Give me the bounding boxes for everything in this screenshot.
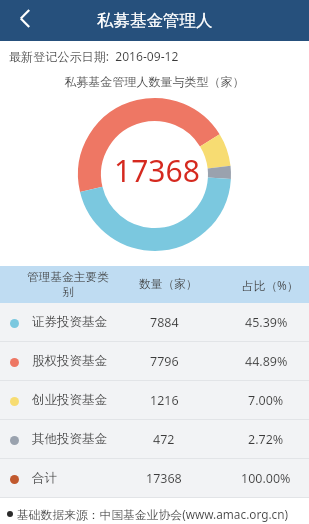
button[interactable]: 合计 [0, 459, 309, 497]
staticText: 股权投资基金 [32, 353, 107, 369]
staticText: 证券投资基金 [32, 314, 107, 330]
button[interactable]: 其他投资基金 [0, 420, 309, 458]
staticText: 2.72% [248, 431, 284, 448]
staticText: 45.39% [245, 314, 288, 331]
staticText: 数量（家） [139, 277, 198, 292]
staticText: 17368 [146, 470, 182, 487]
button[interactable]: 股权投资基金 [0, 342, 309, 380]
staticText: 私募基金管理人数量与类型（家） [0, 74, 309, 89]
staticText: 7796 [150, 353, 179, 370]
staticText: 7.00% [248, 392, 284, 409]
button[interactable]: Back [0, 0, 48, 41]
button[interactable]: 创业投资基金 [0, 381, 309, 419]
staticText: 其他投资基金 [32, 431, 107, 447]
staticText: 7884 [150, 314, 179, 331]
staticText: 合计 [32, 470, 57, 486]
staticText: 基础数据来源：中国基金业协会(www.amac.org.cn) [17, 506, 289, 522]
staticText: 472 [153, 431, 175, 448]
staticText: 占比（%） [242, 277, 299, 293]
button[interactable]: 证券投资基金 [0, 303, 309, 341]
staticText: 1216 [150, 392, 179, 409]
staticText: 最新登记公示日期: 2016-09-12 [9, 48, 179, 65]
staticText: 100.00% [241, 470, 291, 487]
staticText: 管理基金主要类别 [26, 270, 110, 300]
staticText: 私募基金管理人 [97, 10, 213, 31]
staticText: 17368 [114, 150, 200, 191]
staticText: 44.89% [245, 353, 288, 370]
staticText: 创业投资基金 [32, 392, 107, 408]
